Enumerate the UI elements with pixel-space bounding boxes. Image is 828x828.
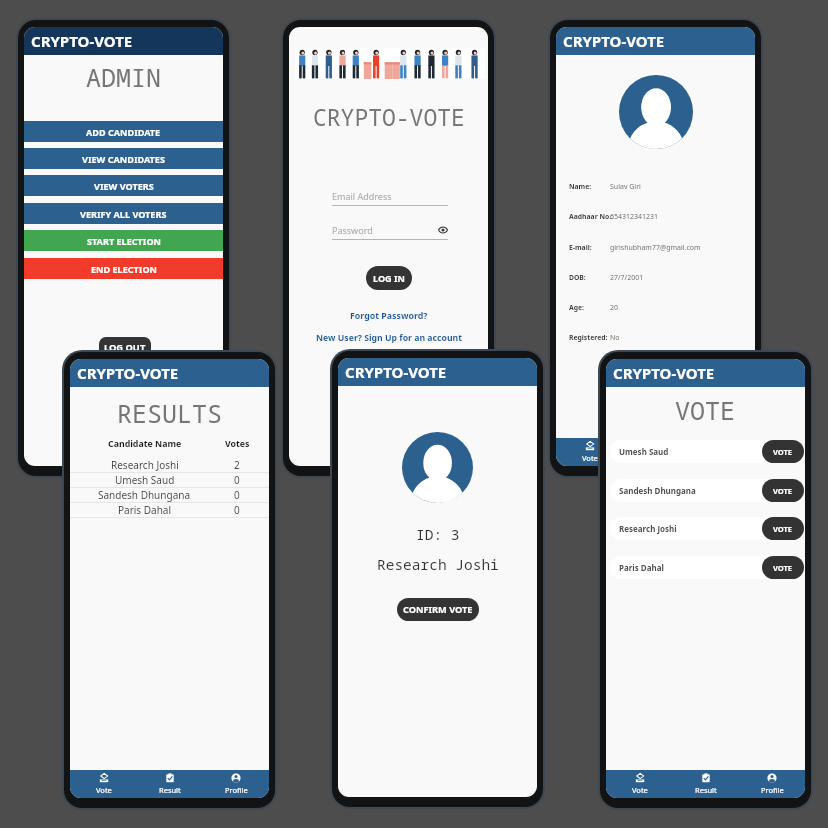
staticText: Aadhaar No.: bbox=[569, 212, 614, 221]
button[interactable]: Profile bbox=[739, 770, 805, 798]
button[interactable]: END ELECTION bbox=[24, 258, 223, 279]
staticText: Umesh Saud bbox=[619, 446, 669, 457]
staticText: ADMIN bbox=[86, 60, 162, 94]
button[interactable]: CRYPTO-VOTE bbox=[70, 359, 269, 387]
staticText: VIEW VOTERS bbox=[94, 180, 154, 192]
staticText: CRYPTO-VOTE bbox=[77, 363, 179, 383]
button[interactable]: Paris Dahal bbox=[78, 503, 263, 517]
staticText: Vote bbox=[632, 785, 648, 795]
button[interactable]: Profile bbox=[203, 770, 269, 798]
staticText: Password bbox=[332, 224, 438, 236]
button[interactable]: CRYPTO-VOTE bbox=[338, 358, 537, 386]
button[interactable]: VOTE bbox=[762, 479, 804, 502]
button[interactable]: Forgot Password? bbox=[350, 310, 428, 322]
staticText: 654312341231 bbox=[610, 212, 659, 222]
staticText: VOTE bbox=[773, 524, 793, 534]
staticText: START ELECTION bbox=[87, 235, 161, 247]
button[interactable]: START ELECTION bbox=[24, 230, 223, 251]
button[interactable]: LOG OUT bbox=[99, 337, 151, 357]
staticText: Paris Dahal bbox=[619, 562, 664, 573]
button[interactable]: Vote bbox=[606, 770, 673, 798]
staticText: Vote bbox=[96, 785, 112, 795]
button[interactable]: New User? Sign Up for an account bbox=[316, 332, 462, 344]
button[interactable]: Research Joshi bbox=[78, 458, 263, 472]
staticText: DOB: bbox=[569, 273, 586, 282]
button[interactable]: Umesh Saud bbox=[610, 440, 804, 463]
button[interactable]: VOTE bbox=[762, 440, 804, 463]
staticText: Age: bbox=[569, 303, 584, 312]
button[interactable]: VERIFY ALL VOTERS bbox=[24, 203, 223, 224]
staticText: Research Joshi bbox=[619, 523, 677, 534]
button[interactable]: Result bbox=[673, 770, 739, 798]
button[interactable]: VIEW VOTERS bbox=[24, 175, 223, 196]
button[interactable]: Paris Dahal bbox=[610, 556, 804, 579]
staticText: 0 bbox=[234, 488, 240, 502]
staticText: Sandesh Dhungana bbox=[619, 485, 696, 496]
button[interactable]: LOG IN bbox=[366, 266, 412, 290]
staticText: CONFIRM VOTE bbox=[403, 603, 473, 616]
other: Show password bbox=[438, 225, 448, 235]
staticText: Paris Dahal bbox=[118, 503, 172, 517]
staticText: Email Address bbox=[332, 190, 448, 202]
staticText: CRYPTO-VOTE bbox=[313, 101, 465, 132]
staticText: Research Joshi bbox=[111, 458, 179, 472]
button[interactable]: CRYPTO-VOTE bbox=[556, 27, 755, 55]
staticText: Name: bbox=[569, 182, 592, 191]
staticText: Vote bbox=[582, 453, 598, 463]
staticText: Registered: bbox=[569, 333, 608, 342]
staticText: VERIFY ALL VOTERS bbox=[80, 208, 167, 220]
button[interactable]: Research Joshi bbox=[610, 517, 804, 540]
button[interactable]: CRYPTO-VOTE bbox=[24, 27, 223, 55]
button[interactable]: CONFIRM VOTE bbox=[397, 598, 479, 621]
button[interactable]: CRYPTO-VOTE bbox=[606, 359, 805, 387]
button[interactable]: Umesh Saud bbox=[78, 473, 263, 487]
staticText: ID: 3 bbox=[416, 524, 460, 544]
button[interactable]: VIEW CANDIDATES bbox=[24, 148, 223, 169]
staticText: VIEW CANDIDATES bbox=[82, 153, 165, 165]
staticText: girishubham77@gmail.com bbox=[610, 243, 701, 253]
staticText: E-mail: bbox=[569, 243, 592, 252]
staticText: VOTE bbox=[773, 563, 793, 573]
staticText: Umesh Saud bbox=[115, 473, 175, 487]
staticText: 2 bbox=[234, 458, 240, 472]
staticText: Profile bbox=[225, 785, 248, 795]
staticText: Profile bbox=[761, 785, 784, 795]
button[interactable]: Vote bbox=[556, 438, 623, 466]
button[interactable]: Sandesh Dhungana bbox=[610, 479, 804, 502]
staticText: No bbox=[610, 333, 620, 343]
staticText: Result bbox=[645, 453, 667, 463]
button[interactable]: Sandesh Dhungana bbox=[78, 488, 263, 502]
staticText: Result bbox=[695, 785, 717, 795]
button[interactable]: VOTE bbox=[762, 517, 804, 540]
staticText: 0 bbox=[234, 503, 240, 517]
staticText: VOTE bbox=[675, 393, 736, 427]
staticText: VOTE bbox=[773, 447, 793, 457]
staticText: Sulav Giri bbox=[610, 182, 641, 192]
staticText: LOG OUT bbox=[104, 341, 146, 354]
staticText: Candidate Name bbox=[108, 438, 182, 450]
staticText: END ELECTION bbox=[91, 263, 157, 275]
staticText: VOTE bbox=[773, 486, 793, 496]
staticText: ADD CANDIDATE bbox=[86, 126, 161, 138]
staticText: Research Joshi bbox=[377, 554, 499, 574]
staticText: Result bbox=[159, 785, 181, 795]
staticText: Sandesh Dhungana bbox=[98, 488, 191, 502]
staticText: LOG IN bbox=[373, 272, 405, 284]
button[interactable]: Result bbox=[137, 770, 203, 798]
staticText: CRYPTO-VOTE bbox=[563, 31, 665, 51]
button[interactable]: Vote bbox=[70, 770, 137, 798]
staticText: 20 bbox=[610, 303, 619, 313]
button[interactable]: Result bbox=[623, 438, 689, 466]
staticText: CRYPTO-VOTE bbox=[345, 362, 447, 382]
button[interactable]: VOTE bbox=[762, 556, 804, 579]
staticText: 0 bbox=[234, 473, 240, 487]
staticText: 27/7/2001 bbox=[610, 273, 644, 283]
staticText: Votes bbox=[225, 438, 250, 450]
staticText: RESULTS bbox=[117, 396, 223, 430]
staticText: CRYPTO-VOTE bbox=[31, 31, 133, 51]
button[interactable]: ADD CANDIDATE bbox=[24, 121, 223, 142]
staticText: CRYPTO-VOTE bbox=[613, 363, 715, 383]
